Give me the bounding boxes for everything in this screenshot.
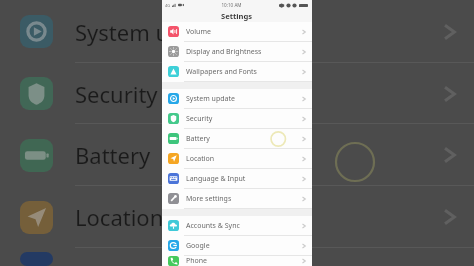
staticText: Volume — [186, 27, 211, 37]
staticText: Accounts & Sync — [186, 221, 240, 231]
button[interactable]: Language & Input — [162, 169, 312, 189]
button[interactable]: Location — [0, 186, 474, 248]
staticText: Wallpapers and Fonts — [186, 67, 257, 77]
button[interactable]: Wallpapers and Fonts — [162, 62, 312, 82]
staticText: Display and Brightness — [186, 47, 262, 57]
staticText: System update — [186, 94, 235, 104]
staticText: System update — [75, 17, 229, 47]
staticText: Security — [186, 114, 213, 124]
button[interactable]: Volume — [162, 22, 312, 42]
staticText: Phone — [186, 256, 208, 266]
staticText: Language & Input — [186, 174, 246, 184]
button[interactable]: System update — [162, 89, 312, 109]
button[interactable]: Security — [162, 109, 312, 129]
staticText: Security — [75, 79, 158, 109]
staticText: Battery — [75, 140, 151, 170]
button[interactable]: Accounts & Sync — [162, 216, 312, 236]
button[interactable]: Display and Brightness — [162, 42, 312, 62]
button[interactable]: System update — [0, 0, 474, 63]
staticText: 10:10 AM — [221, 2, 242, 8]
button[interactable]: Security — [0, 63, 474, 124]
button[interactable]: More settings — [162, 189, 312, 209]
button[interactable]: Battery — [162, 129, 312, 149]
staticText: 4G — [165, 3, 171, 8]
staticText: Google — [186, 241, 210, 251]
button[interactable]: Location — [162, 149, 312, 169]
button[interactable]: Phone — [162, 256, 312, 266]
staticText: Location — [75, 202, 164, 232]
staticText: Settings — [221, 11, 253, 21]
button[interactable]: Google — [162, 236, 312, 256]
staticText: Battery — [186, 134, 210, 144]
button[interactable]: Battery — [0, 124, 474, 186]
staticText: More settings — [186, 194, 232, 204]
staticText: Location — [186, 154, 215, 164]
